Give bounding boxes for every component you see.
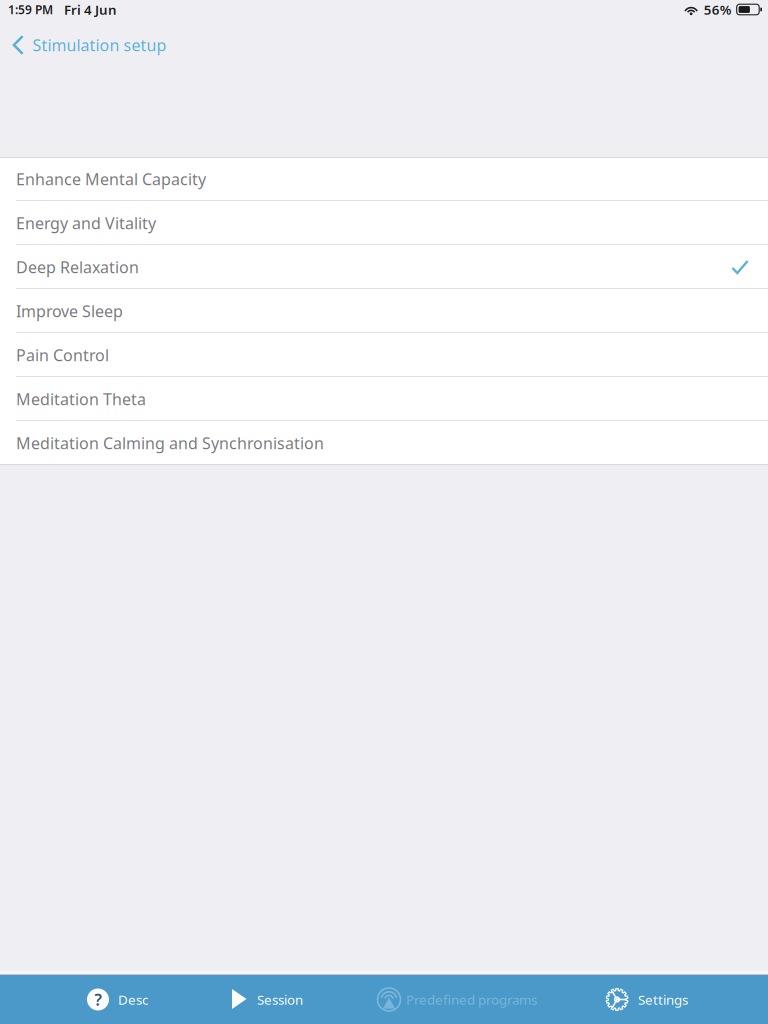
staticText: Settings <box>638 991 688 1008</box>
staticText: Fri 4 Jun <box>64 1 117 18</box>
button[interactable]: Pain Control <box>0 333 768 377</box>
staticText: Desc <box>118 991 148 1008</box>
button[interactable]: Settings <box>569 975 724 1024</box>
button[interactable]: Energy and Vitality <box>0 201 768 245</box>
staticText: Pain Control <box>16 344 109 366</box>
staticText: 1:59 PM <box>8 1 53 17</box>
button[interactable]: Enhance Mental Capacity <box>0 157 768 201</box>
button[interactable]: Meditation Theta <box>0 377 768 421</box>
staticText: Energy and Vitality <box>16 212 156 234</box>
staticText: Stimulation setup <box>32 34 166 56</box>
staticText: Predefined programs <box>406 991 537 1008</box>
staticText: 56% <box>704 1 732 18</box>
button[interactable]: Meditation Calming and Synchronisation <box>0 421 768 465</box>
button[interactable]: Improve Sleep <box>0 289 768 333</box>
button[interactable]: Stimulation setup <box>0 23 178 67</box>
staticText: Meditation Calming and Synchronisation <box>16 432 324 454</box>
staticText: ? <box>94 989 101 1010</box>
button[interactable]: ? <box>46 975 188 1024</box>
button[interactable]: Deep Relaxation <box>0 245 768 289</box>
staticText: Improve Sleep <box>16 300 123 322</box>
staticText: Enhance Mental Capacity <box>16 168 206 190</box>
button[interactable]: Session <box>193 975 339 1024</box>
button[interactable]: Predefined programs <box>343 975 571 1024</box>
staticText: Meditation Theta <box>16 388 146 410</box>
staticText: Deep Relaxation <box>16 256 139 278</box>
staticText: Session <box>257 991 303 1008</box>
